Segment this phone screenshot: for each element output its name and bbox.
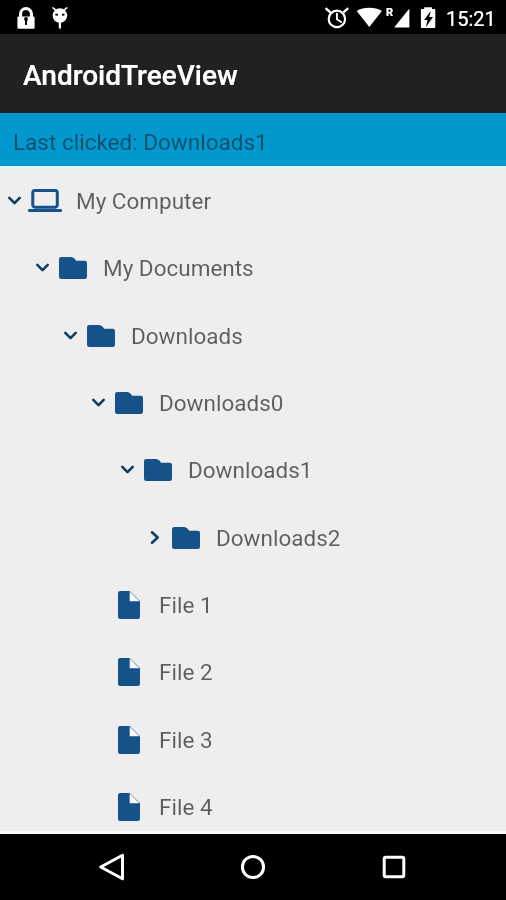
button[interactable]: File 1 [0,571,506,638]
staticText: File 3 [159,727,213,753]
staticText: My Documents [103,255,254,281]
staticText: My Computer [76,188,212,214]
staticText: File 2 [159,659,213,685]
button[interactable]: Downloads2 [0,504,506,571]
button[interactable]: Last clicked: Downloads1 [0,113,506,166]
button[interactable]: My Computer [0,169,506,234]
staticText: File 4 [159,794,213,820]
staticText: AndroidTreeView [23,59,238,92]
staticText: R [386,6,394,19]
staticText: Downloads1 [188,457,313,483]
button[interactable]: Downloads1 [0,436,506,503]
staticText: Downloads2 [216,525,341,551]
button[interactable]: Downloads0 [0,369,506,436]
button[interactable]: Home [229,843,277,891]
staticText: Downloads0 [159,390,284,416]
staticText: File 1 [159,592,213,618]
staticText: Last clicked: Downloads1 [13,129,268,155]
button[interactable]: My Documents [0,234,506,301]
staticText: 15:21 [446,7,496,30]
button[interactable]: File 4 [0,773,506,831]
button[interactable]: File 2 [0,638,506,705]
button[interactable]: File 3 [0,706,506,773]
staticText: Downloads [131,323,243,349]
button[interactable]: Downloads [0,302,506,369]
button[interactable]: Recents [370,843,418,891]
button[interactable]: Back [88,843,136,891]
